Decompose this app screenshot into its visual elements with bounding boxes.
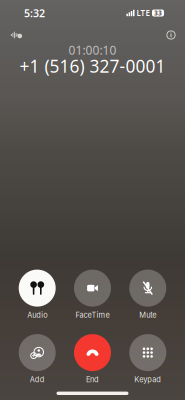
button[interactable]: Audio: [19, 270, 56, 320]
staticText: End: [86, 375, 99, 384]
button[interactable]: End: [74, 334, 111, 385]
staticText: 33: [154, 9, 162, 17]
staticText: FaceTime: [75, 311, 109, 320]
staticText: 01:00:10: [68, 42, 116, 58]
button[interactable]: Keypad: [129, 334, 166, 385]
staticText: Add: [30, 375, 45, 384]
staticText: Keypad: [134, 375, 161, 384]
staticText: +1 (516) 327-0001: [19, 54, 165, 77]
staticText: LTE: [136, 8, 149, 18]
button[interactable]: Mute: [129, 270, 166, 320]
staticText: Mute: [139, 311, 156, 320]
staticText: Audio: [27, 311, 47, 320]
staticText: 5:32: [24, 6, 45, 20]
button[interactable]: Add: [19, 334, 56, 385]
button[interactable]: Live Voicemail: [5, 26, 27, 44]
button[interactable]: Call Details: [160, 26, 182, 44]
button[interactable]: FaceTime: [74, 270, 111, 320]
